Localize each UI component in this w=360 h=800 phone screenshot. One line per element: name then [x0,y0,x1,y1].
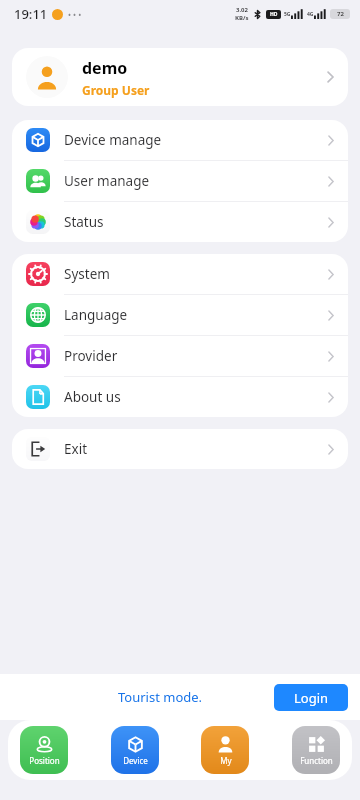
staticText: Tourist mode. [118,688,203,706]
staticText: Function [300,755,333,766]
staticText: Exit [64,440,328,458]
button[interactable]: About us [12,377,348,417]
staticText: My [220,755,232,766]
button[interactable]: Exit [12,429,348,469]
button[interactable]: Device manage [12,120,348,160]
staticText: 72 [337,10,344,18]
button[interactable]: System [12,254,348,294]
staticText: Status [64,213,328,231]
staticText: Position [29,755,60,766]
button[interactable]: Provider [12,336,348,376]
button[interactable]: My [201,726,249,774]
staticText: 3.02 [236,6,248,14]
button[interactable]: Device [111,726,159,774]
button[interactable]: Login [274,684,348,711]
button[interactable]: User manage [12,161,348,201]
staticText: 5G [284,11,291,18]
staticText: Group User [82,82,150,98]
staticText: Device [123,755,148,766]
staticText: Provider [64,347,328,365]
button[interactable]: demo [12,48,348,106]
staticText: Login [294,689,329,707]
staticText: 19:11 [14,5,48,23]
staticText: KB/s [235,14,249,22]
staticText: User manage [64,172,328,190]
staticText: HD [270,11,278,18]
staticText: 4G [307,11,314,18]
staticText: System [64,265,328,283]
button[interactable]: Status [12,202,348,242]
staticText: • • • [68,9,82,20]
button[interactable]: Language [12,295,348,335]
staticText: demo [82,57,128,79]
staticText: Language [64,306,328,324]
button[interactable]: Function [292,726,340,774]
button[interactable]: Position [20,726,68,774]
staticText: Device manage [64,131,328,149]
staticText: About us [64,388,328,406]
